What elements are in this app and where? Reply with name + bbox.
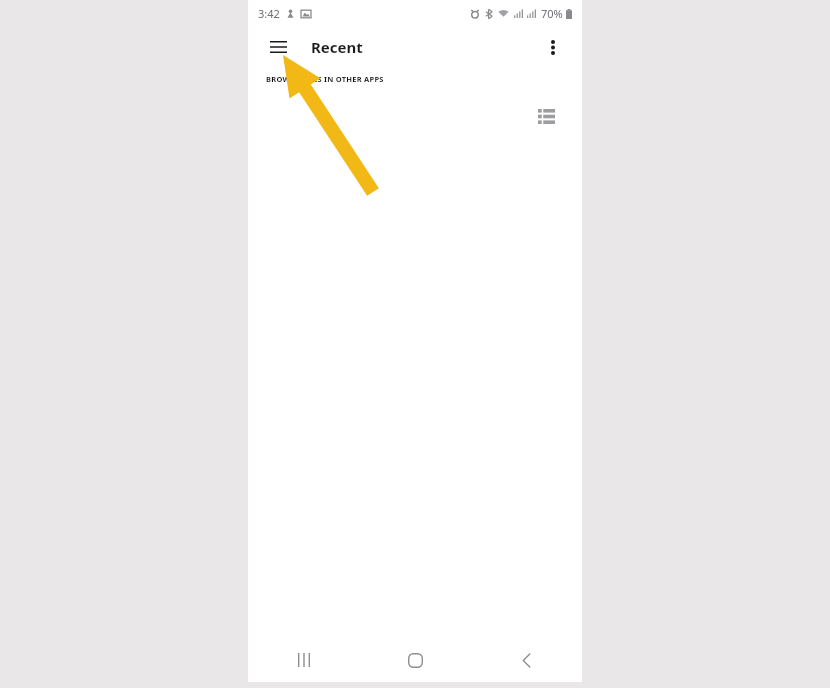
button[interactable]: Change view	[531, 101, 561, 131]
staticText: Recent	[311, 37, 363, 57]
button[interactable]: Back	[471, 638, 582, 682]
staticText: 3:42	[258, 6, 280, 21]
button[interactable]: Home	[360, 638, 471, 682]
staticText: 70%	[541, 6, 563, 21]
button[interactable]: More options	[538, 32, 568, 62]
button[interactable]: BROWSE FILES IN OTHER APPS	[266, 74, 384, 84]
button[interactable]: Recent apps	[248, 638, 360, 682]
button[interactable]: Open navigation drawer	[263, 32, 293, 62]
